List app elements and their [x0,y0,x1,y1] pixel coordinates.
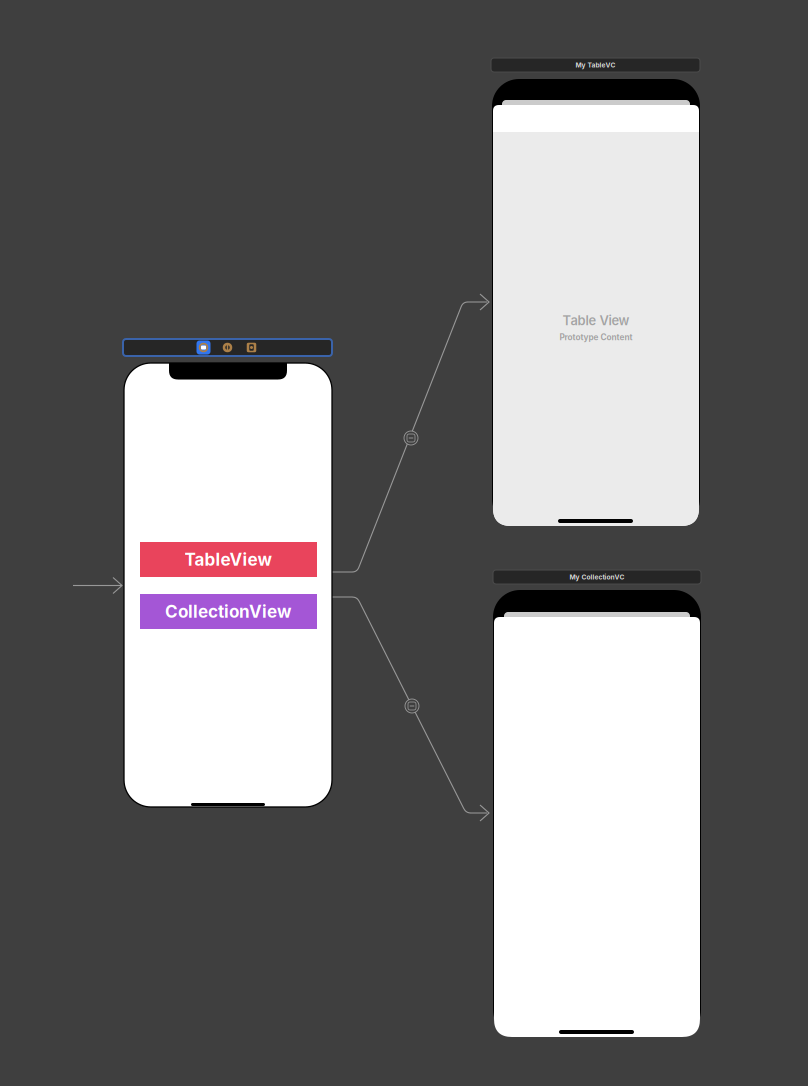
staticText: Table View [562,313,629,328]
staticText: My CollectionVC [569,573,624,581]
staticText: My TableVC [575,61,615,69]
button[interactable]: My CollectionVC [493,570,701,584]
staticText: Prototype Content [559,332,632,342]
button[interactable]: CollectionView [140,594,317,629]
button[interactable]: My TableVC [491,58,700,72]
button[interactable]: First responder [220,340,235,355]
staticText: CollectionView [165,601,292,622]
button[interactable]: View controller [196,340,211,355]
staticText: TableView [184,549,272,570]
button[interactable]: Exit [244,340,259,355]
button[interactable]: TableView [140,542,317,577]
